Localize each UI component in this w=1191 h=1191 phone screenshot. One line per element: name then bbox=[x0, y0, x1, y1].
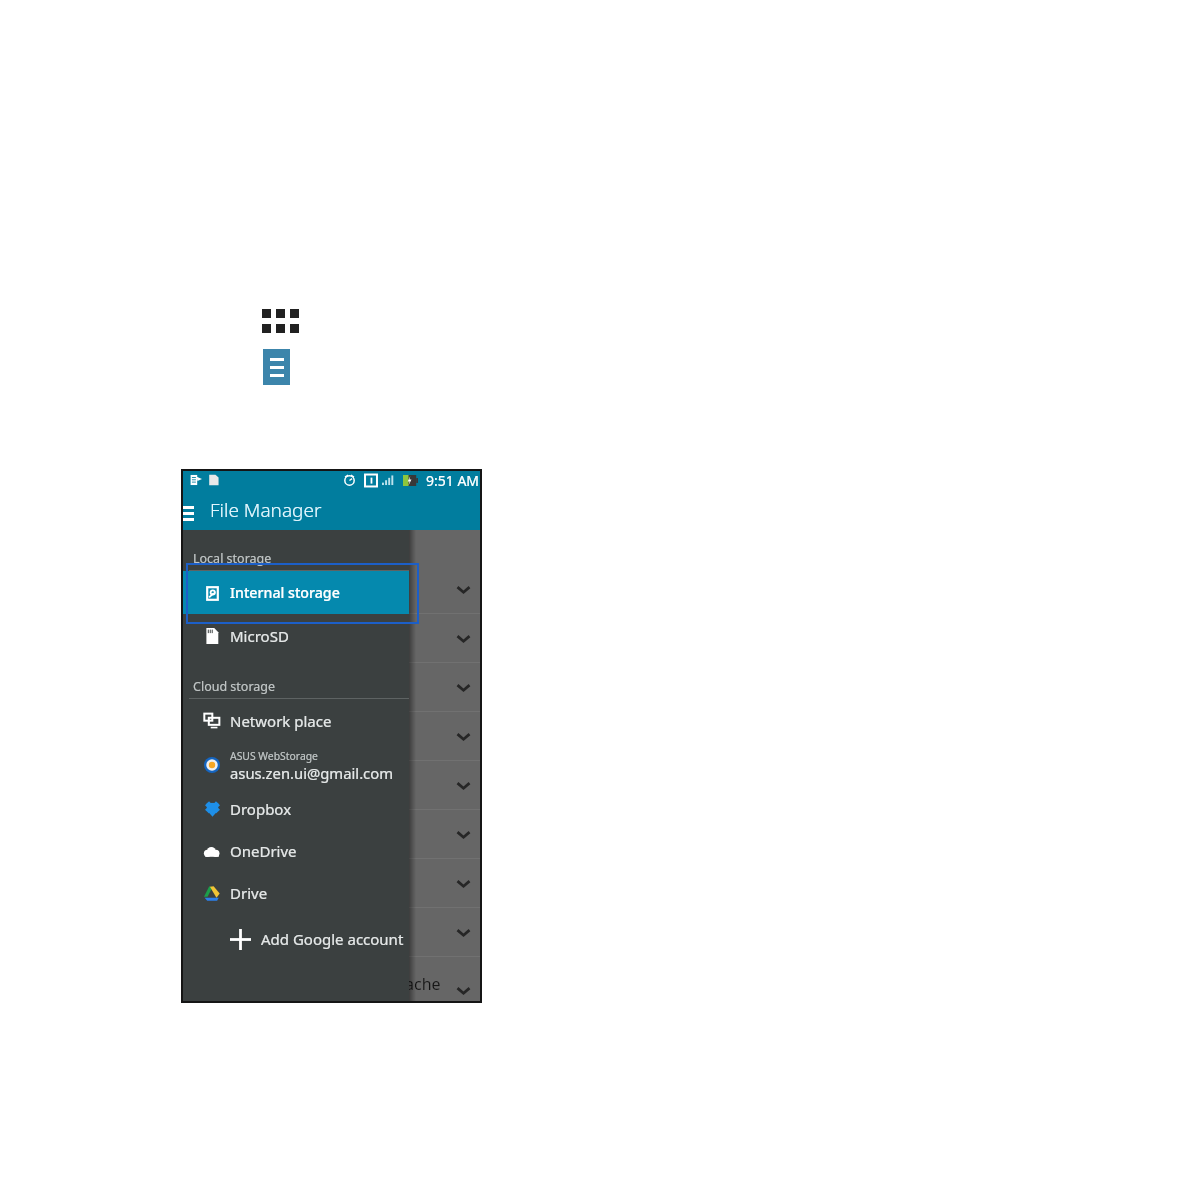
staticText: Network place bbox=[230, 711, 332, 731]
staticText: asus.zen.ui@gmail.com bbox=[230, 763, 393, 783]
staticText: ache bbox=[405, 973, 441, 995]
staticText: OneDrive bbox=[230, 841, 297, 861]
button[interactable]: File Manager bbox=[263, 349, 290, 385]
button[interactable]: Dropbox bbox=[183, 788, 409, 830]
staticText: MicroSD bbox=[230, 626, 289, 646]
button[interactable]: Drive bbox=[183, 872, 409, 914]
staticText: Internal storage bbox=[230, 583, 340, 602]
button[interactable]: MicroSD bbox=[183, 614, 409, 658]
staticText: 9:51 AM bbox=[426, 471, 480, 489]
staticText: Local storage bbox=[193, 550, 272, 567]
button[interactable]: Network place bbox=[183, 699, 409, 742]
button[interactable]: All apps bbox=[262, 309, 299, 333]
staticText: File Manager bbox=[210, 497, 322, 523]
button[interactable]: OneDrive bbox=[183, 830, 409, 872]
staticText: Dropbox bbox=[230, 799, 292, 819]
staticText: Cloud storage bbox=[193, 678, 276, 695]
staticText: ASUS WebStorage bbox=[230, 749, 318, 763]
staticText: Add Google account bbox=[261, 929, 404, 949]
button[interactable]: Add Google account bbox=[183, 918, 409, 960]
button[interactable]: Internal storage bbox=[183, 571, 409, 614]
button[interactable]: Open navigation drawer bbox=[183, 497, 210, 529]
staticText: Drive bbox=[230, 883, 268, 903]
button[interactable]: ASUS WebStorage bbox=[183, 742, 409, 788]
